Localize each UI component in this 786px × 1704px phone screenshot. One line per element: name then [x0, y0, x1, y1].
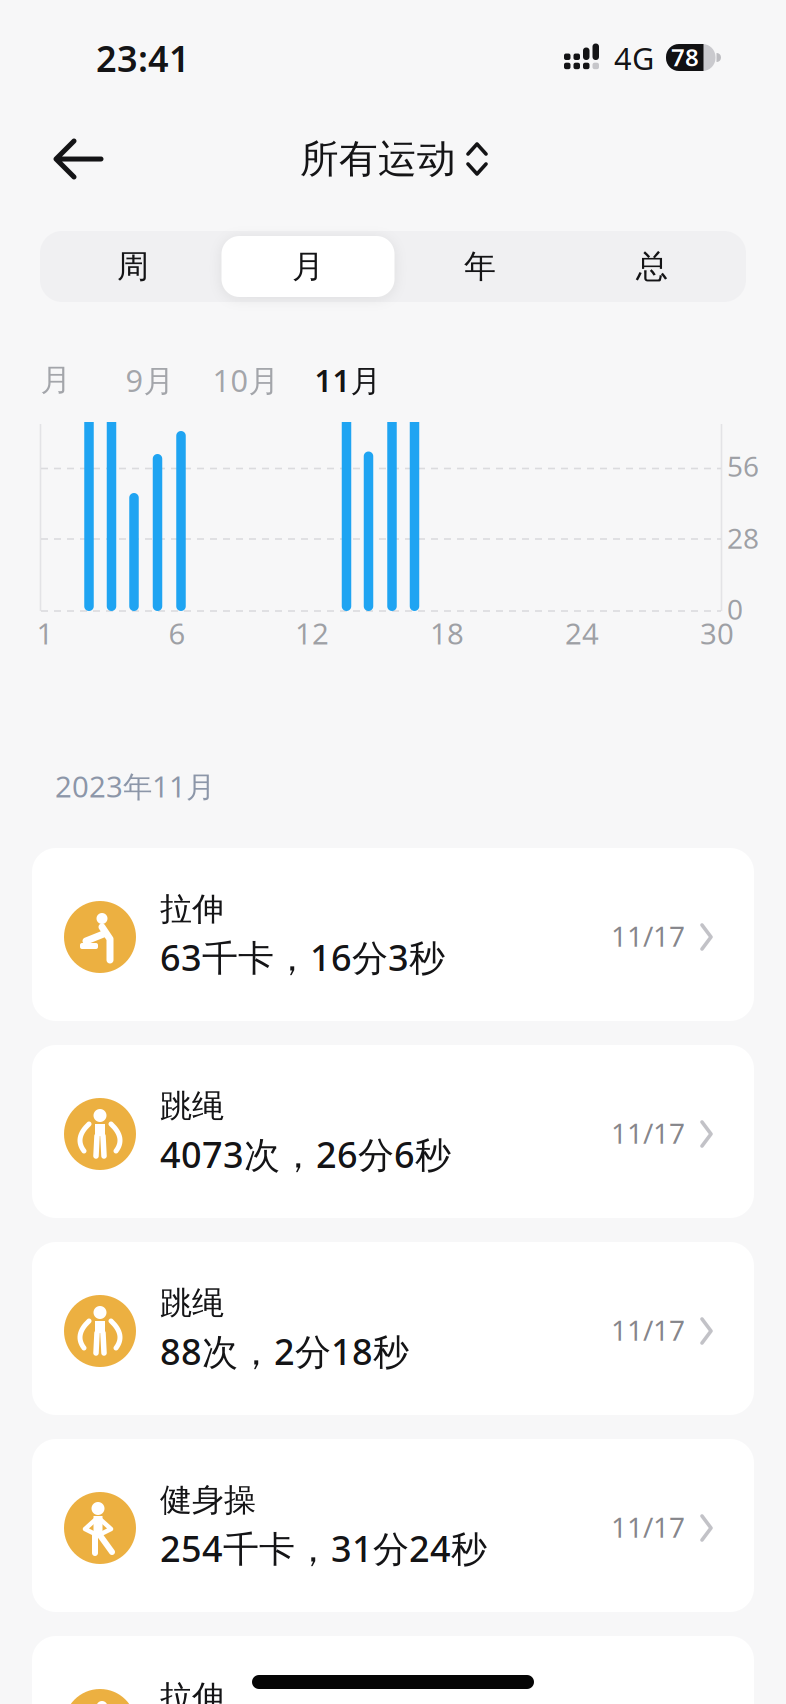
staticText: 2023年11月: [55, 766, 215, 805]
button[interactable]: 总: [566, 231, 738, 302]
button[interactable]: 月: [40, 361, 71, 399]
staticText: 0: [727, 590, 743, 628]
staticText: 年: [464, 247, 496, 286]
staticText: 健身操: [160, 1480, 256, 1520]
button[interactable]: 拉伸: [32, 848, 754, 1021]
staticText: 88次，2分18秒: [160, 1327, 409, 1375]
staticText: 56: [727, 447, 759, 485]
staticText: 拉伸: [160, 1677, 224, 1704]
staticText: 跳绳: [160, 1086, 224, 1126]
staticText: 254千卡，31分24秒: [160, 1524, 487, 1572]
staticText: 总: [636, 247, 668, 286]
staticText: 63千卡，16分3秒: [160, 933, 445, 981]
staticText: 23:41: [96, 34, 190, 82]
button[interactable]: 10月: [212, 360, 279, 400]
button[interactable]: 月: [222, 231, 394, 302]
staticText: 30: [700, 613, 734, 652]
button[interactable]: 拉伸: [32, 1636, 754, 1704]
staticText: 11/17: [611, 1508, 685, 1546]
staticText: 10月: [212, 360, 279, 400]
button[interactable]: 所有运动: [300, 135, 488, 183]
button[interactable]: 9月: [125, 360, 174, 400]
staticText: 周: [117, 247, 149, 286]
button[interactable]: 跳绳: [32, 1045, 754, 1218]
staticText: 28: [727, 519, 759, 557]
staticText: 月: [292, 247, 324, 286]
staticText: 拉伸: [160, 889, 224, 929]
button[interactable]: 11月: [314, 360, 381, 400]
staticText: 11月: [314, 360, 381, 400]
staticText: 9月: [125, 360, 174, 400]
staticText: 78: [671, 41, 699, 73]
button[interactable]: 健身操: [32, 1439, 754, 1612]
staticText: 1: [36, 613, 53, 652]
staticText: 6: [168, 613, 185, 652]
button[interactable]: [48, 129, 108, 189]
staticText: 4G: [614, 38, 654, 78]
staticText: 11/17: [611, 1311, 685, 1349]
button[interactable]: 年: [394, 231, 566, 302]
staticText: 11/17: [611, 1114, 685, 1152]
button[interactable]: 跳绳: [32, 1242, 754, 1415]
staticText: 12: [295, 613, 329, 652]
staticText: 月: [40, 361, 71, 399]
staticText: 11/17: [611, 917, 685, 955]
staticText: 所有运动: [300, 135, 456, 183]
staticText: 18: [430, 613, 464, 652]
button[interactable]: 周: [47, 231, 219, 302]
staticText: 24: [565, 613, 599, 652]
staticText: 4073次，26分6秒: [160, 1130, 451, 1178]
staticText: 跳绳: [160, 1283, 224, 1323]
